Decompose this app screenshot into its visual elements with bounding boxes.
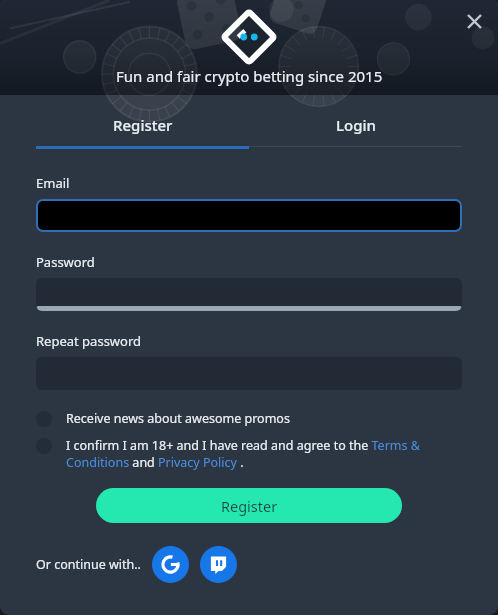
staticText: I confirm I am 18+ and I have read and a… [66, 437, 462, 471]
staticText: Email [36, 174, 70, 192]
staticText: Or continue with.. [36, 556, 141, 573]
button[interactable]: Register [36, 111, 249, 138]
button[interactable]: Close [458, 5, 490, 37]
staticText: Register [221, 496, 278, 516]
button[interactable]: Login [249, 111, 462, 138]
button[interactable] [36, 278, 462, 311]
button[interactable]: Register [96, 488, 402, 523]
button[interactable]: Receive news about awesome promos [36, 410, 462, 427]
button[interactable]: I confirm I am 18+ and I have read and a… [36, 437, 462, 471]
staticText: Receive news about awesome promos [66, 410, 290, 427]
staticText: Password [36, 253, 95, 271]
button[interactable]: Sign in with Twitch [200, 546, 237, 583]
staticText: Fun and fair crypto betting since 2015 [116, 66, 383, 86]
staticText: Repeat password [36, 332, 142, 350]
staticText: Login [336, 115, 376, 135]
button[interactable]: Sign in with Google [152, 546, 189, 583]
button[interactable] [38, 201, 460, 230]
staticText: Register [113, 115, 173, 135]
